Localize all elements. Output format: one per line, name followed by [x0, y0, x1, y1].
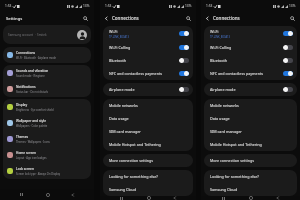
- button[interactable]: Toggle: [179, 31, 189, 36]
- staticText: Wi-Fi · Bluetooth · Airplane mode: [16, 56, 56, 60]
- staticText: NFC and contactless payments: [109, 71, 163, 76]
- staticText: Settings: [6, 16, 23, 22]
- staticText: Themes · Wallpapers · Icons: [16, 140, 50, 144]
- button[interactable]: Looking for something else?: [204, 170, 297, 183]
- button[interactable]: Data usage: [103, 112, 193, 125]
- staticText: Status bar · Do not disturb: [16, 90, 49, 94]
- button[interactable]: Mobile Hotspot and Tethering: [103, 138, 193, 151]
- staticText: Airplane mode: [109, 87, 135, 92]
- staticText: Bluetooth: [109, 58, 127, 63]
- staticText: More connection settings: [210, 158, 254, 163]
- staticText: Mobile Hotspot and Tethering: [109, 142, 161, 147]
- button[interactable]: Home screen: [3, 147, 91, 163]
- button[interactable]: Mobile Hotspot and Tethering: [204, 138, 297, 151]
- button[interactable]: Back: [68, 190, 77, 199]
- staticText: Sounds and vibration: [16, 69, 49, 73]
- staticText: Wi-Fi Calling: [109, 45, 131, 50]
- staticText: More connection settings: [109, 158, 153, 163]
- button[interactable]: Home: [246, 196, 255, 200]
- button[interactable]: SIM card manager: [204, 125, 297, 138]
- button[interactable]: Back: [170, 196, 179, 200]
- staticText: Connections: [16, 51, 35, 55]
- button[interactable]: Airplane mode: [204, 83, 297, 96]
- button[interactable]: Wi-Fi: [204, 26, 297, 41]
- button[interactable]: Search: [184, 14, 193, 23]
- staticText: Screen lock type · Always On Display: [16, 172, 61, 176]
- button[interactable]: Recents: [17, 190, 26, 199]
- staticText: Home screen: [16, 151, 37, 155]
- button[interactable]: Mobile networks: [103, 99, 193, 112]
- staticText: NFC and contactless payments: [210, 71, 264, 76]
- staticText: Wi-Fi Calling: [210, 45, 232, 50]
- button[interactable]: Samsung account · Smitek: [3, 25, 91, 44]
- staticText: Wi-Fi: [109, 29, 118, 34]
- staticText: Wallpapers · Color palette: [16, 124, 48, 128]
- button[interactable]: Bluetooth: [204, 54, 297, 67]
- staticText: Layout · App icon badges: [16, 156, 47, 160]
- button[interactable]: NFC and contactless payments: [204, 67, 297, 80]
- staticText: Airplane mode: [210, 87, 236, 92]
- button[interactable]: Toggle: [283, 45, 293, 50]
- staticText: Samsung Cloud: [210, 187, 238, 192]
- staticText: Sound mode · Ringtone: [16, 74, 45, 78]
- button[interactable]: Toggle: [179, 58, 189, 63]
- staticText: Samsung Cloud: [109, 187, 137, 192]
- staticText: Bluetooth: [210, 58, 228, 63]
- button[interactable]: Recents: [117, 196, 126, 200]
- staticText: 13%: [83, 4, 90, 8]
- button[interactable]: Back: [102, 14, 111, 23]
- button[interactable]: More connection settings: [204, 154, 297, 167]
- button[interactable]: Search: [288, 14, 297, 23]
- button[interactable]: Toggle: [179, 71, 189, 76]
- button[interactable]: Home: [43, 190, 52, 199]
- staticText: Looking for something else?: [210, 174, 259, 179]
- staticText: 1:53: [206, 4, 213, 8]
- staticText: Looking for something else?: [109, 174, 158, 179]
- staticText: 1:53: [5, 4, 12, 8]
- staticText: Themes: [16, 135, 29, 139]
- staticText: Wi-Fi: [210, 29, 219, 34]
- button[interactable]: Data usage: [204, 112, 297, 125]
- button[interactable]: Lock screen: [3, 163, 91, 179]
- button[interactable]: Wi-Fi Calling: [103, 41, 193, 54]
- staticText: Samsung account · Smitek: [8, 33, 47, 37]
- button[interactable]: Samsung Cloud: [204, 183, 297, 196]
- staticText: Brightness · Eye comfort shield: [16, 108, 54, 112]
- button[interactable]: Toggle: [179, 87, 189, 92]
- button[interactable]: Notifications: [3, 81, 91, 97]
- button[interactable]: Wallpaper and style: [3, 115, 91, 131]
- button[interactable]: Display: [3, 99, 91, 115]
- button[interactable]: NFC and contactless payments: [103, 67, 193, 80]
- button[interactable]: Wi-Fi: [103, 26, 193, 41]
- button[interactable]: Looking for something else?: [103, 170, 193, 183]
- button[interactable]: Recents: [219, 196, 228, 200]
- staticText: Mobile networks: [210, 103, 239, 108]
- button[interactable]: Toggle: [283, 71, 293, 76]
- button[interactable]: Toggle: [283, 87, 293, 92]
- button[interactable]: Toggle: [179, 45, 189, 50]
- button[interactable]: Search: [81, 14, 90, 23]
- button[interactable]: SIM card manager: [103, 125, 193, 138]
- button[interactable]: Toggle: [283, 31, 293, 36]
- button[interactable]: Samsung Cloud: [103, 183, 193, 196]
- staticText: Wallpaper and style: [16, 119, 47, 123]
- staticText: Display: [16, 103, 28, 107]
- button[interactable]: Bluetooth: [103, 54, 193, 67]
- button[interactable]: Mobile networks: [204, 99, 297, 112]
- staticText: Lock screen: [16, 167, 34, 171]
- button[interactable]: Back: [203, 14, 212, 23]
- staticText: 13%: [289, 4, 296, 8]
- staticText: Mobile Hotspot and Tethering: [210, 142, 262, 147]
- button[interactable]: Wi-Fi Calling: [204, 41, 297, 54]
- button[interactable]: Sounds and vibration: [3, 65, 91, 81]
- staticText: Connections: [213, 15, 240, 21]
- button[interactable]: Themes: [3, 131, 91, 147]
- button[interactable]: Back: [273, 196, 282, 200]
- staticText: Data usage: [109, 116, 129, 121]
- button[interactable]: Airplane mode: [103, 83, 193, 96]
- button[interactable]: Home: [144, 196, 153, 200]
- staticText: TP-LINK_B00A13: [109, 35, 130, 39]
- button[interactable]: More connection settings: [103, 154, 193, 167]
- button[interactable]: Toggle: [283, 58, 293, 63]
- button[interactable]: Connections: [3, 47, 91, 63]
